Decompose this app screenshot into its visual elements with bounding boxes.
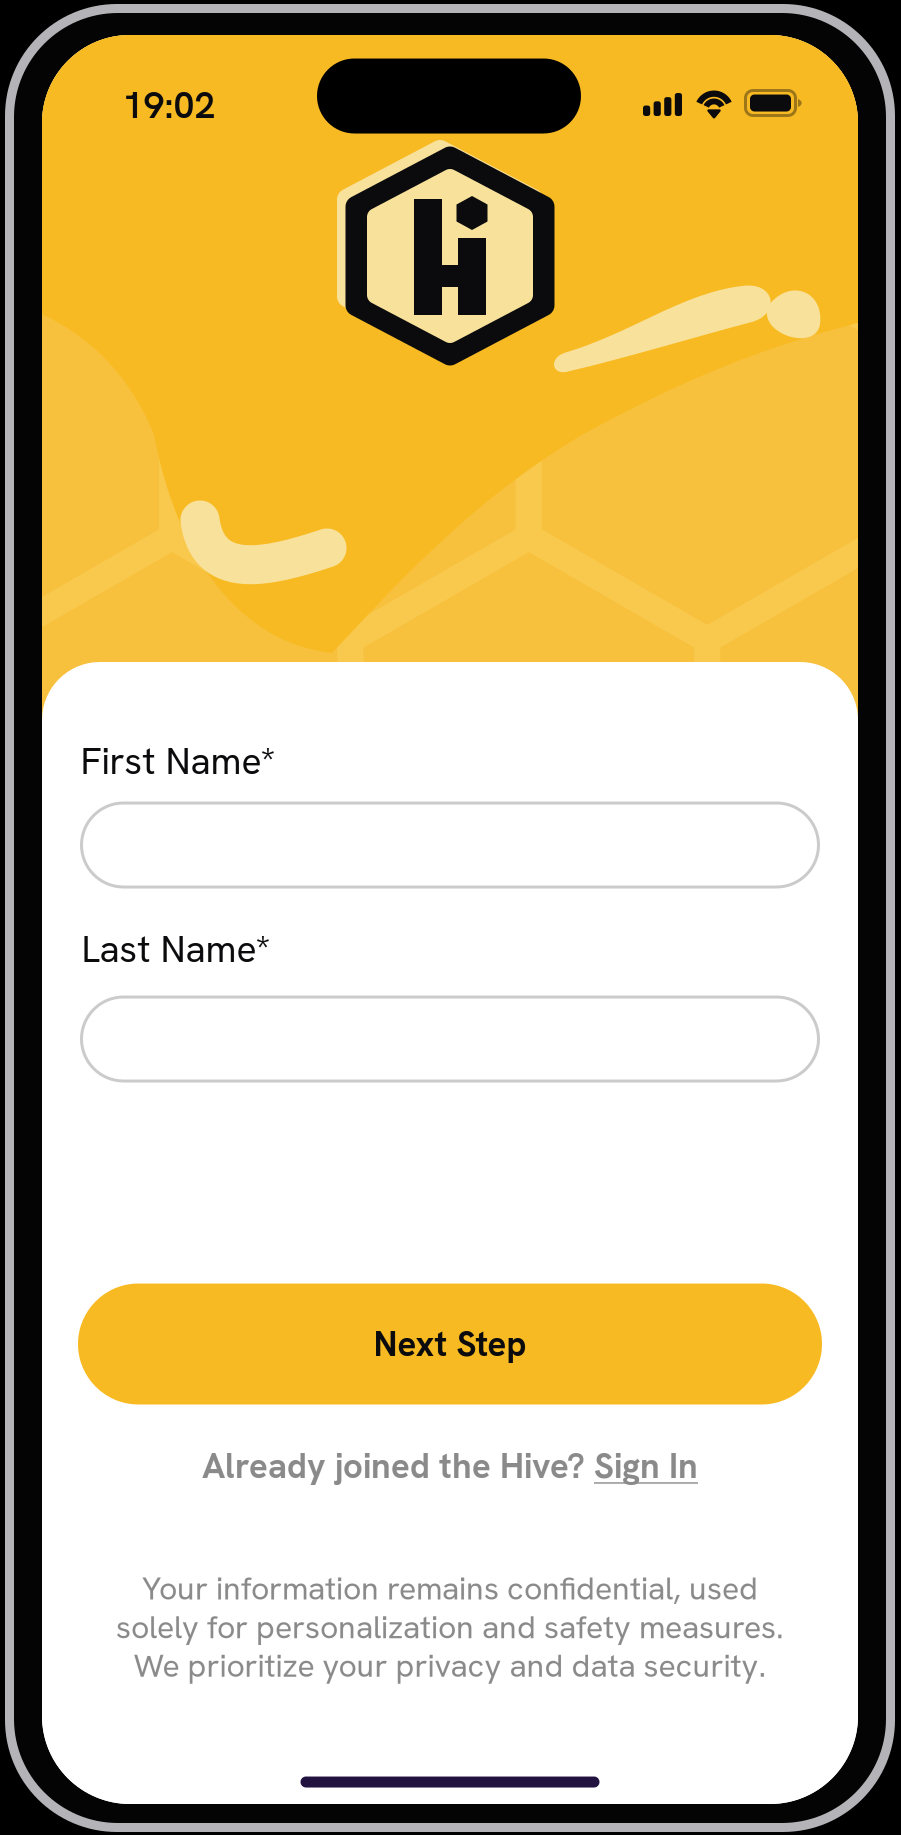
- staticText: First Name*: [80, 737, 275, 785]
- staticText: Sign In: [594, 1443, 698, 1489]
- staticText: 19:02: [122, 81, 215, 129]
- staticText: We prioritize your privacy and data secu…: [133, 1645, 766, 1686]
- staticText: Already joined the Hive?: [202, 1443, 594, 1489]
- staticText: Last Name*: [81, 925, 270, 973]
- button[interactable]: Next Step: [78, 1283, 822, 1404]
- staticText: solely for personalization and safety me…: [116, 1606, 784, 1648]
- staticText: Your information remains confidential, u…: [142, 1567, 758, 1609]
- staticText: Next Step: [373, 1321, 526, 1367]
- button[interactable]: Already joined the Hive?: [42, 1438, 858, 1494]
